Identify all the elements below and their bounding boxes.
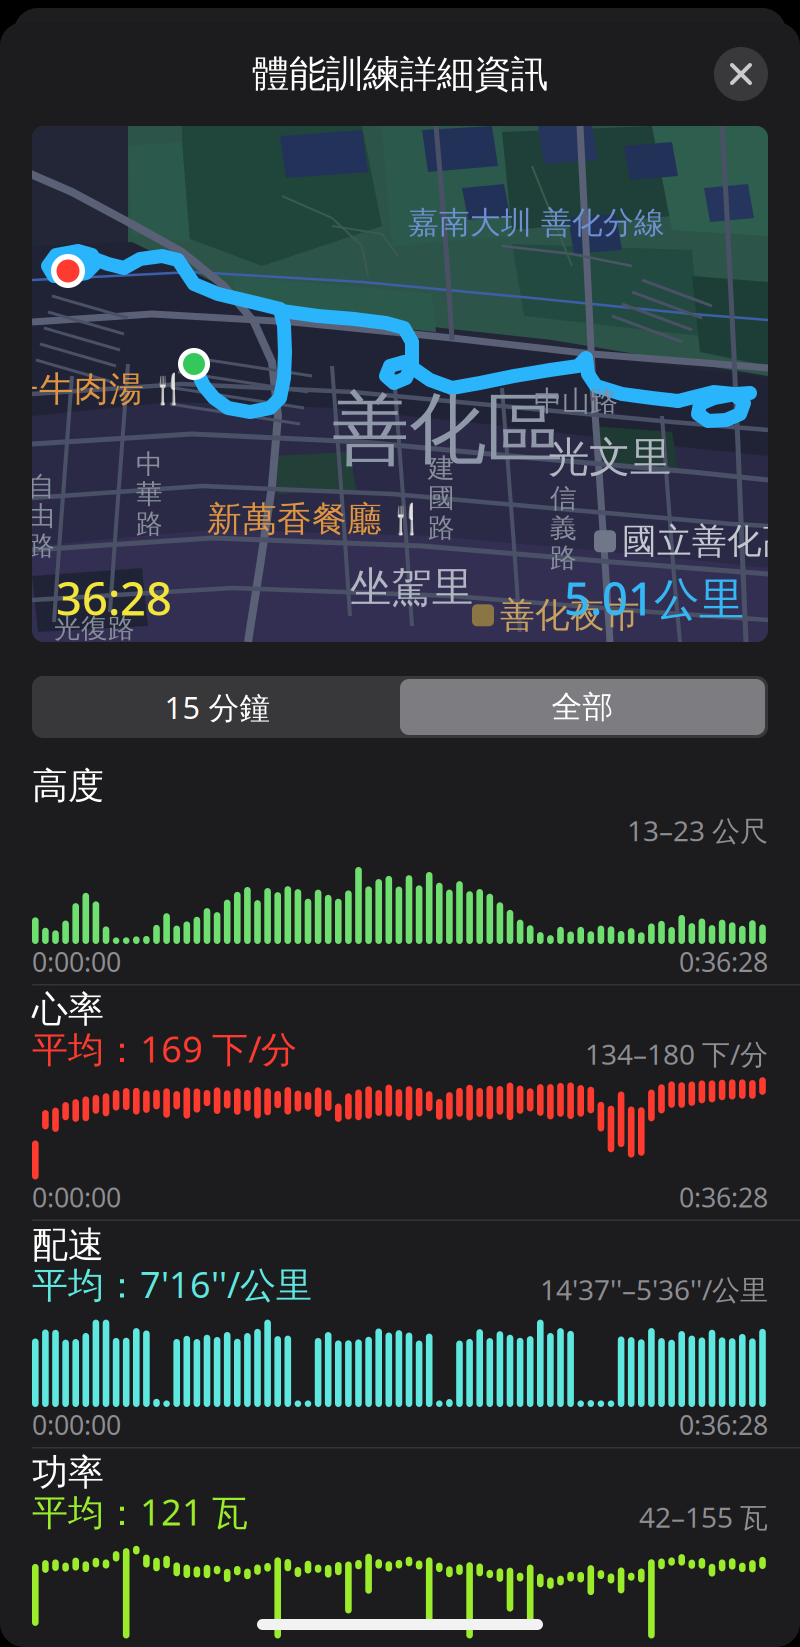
staticText: 14'37''–5'36''/公里 [540,1271,768,1308]
staticText: 光文里 [548,432,671,483]
staticText: 體能訓練詳細資訊 [252,51,548,97]
staticText: 子牛肉湯 [4,368,144,411]
staticText: 36:28 [56,568,172,628]
staticText: 路 [136,507,163,540]
staticText: 國 [428,482,455,515]
staticText: 路 [28,529,55,562]
button[interactable]: 全部 [400,679,765,735]
staticText: 功率 [32,1450,104,1495]
staticText: 光復路 [54,612,135,645]
staticText: 0:36:28 [679,1407,768,1442]
staticText: 平均：121 瓦 [32,1488,248,1535]
staticText: 新萬香餐廳 [207,498,382,541]
staticText: 平均：169 下/分 [32,1025,297,1072]
button[interactable]: 15 分鐘 [35,679,400,735]
staticText: 信 [550,482,577,515]
staticText: 0:36:28 [679,1179,768,1215]
staticText: 13–23 公尺 [627,812,768,849]
staticText: 15 分鐘 [164,687,270,727]
staticText: 🍴 [150,372,187,406]
staticText: 134–180 下/分 [585,1035,768,1072]
staticText [32,801,41,849]
staticText: 配速 [32,1223,104,1267]
staticText: 0:00:00 [32,1407,121,1442]
staticText: 嘉南大圳 善化分線 [408,204,665,242]
staticText: 0:00:00 [32,1179,121,1215]
staticText: 坐駕里 [350,562,473,613]
staticText: 全部 [551,688,613,726]
staticText: 高度 [32,764,104,808]
staticText: 自 [28,470,55,503]
staticText: 華 [136,478,163,511]
staticText: 0:00:00 [32,944,121,979]
staticText: 建 [428,452,455,485]
staticText: 心率 [32,987,104,1032]
staticText: 路 [550,541,577,574]
staticText: 42–155 瓦 [639,1498,768,1535]
staticText: 善化夜市 [500,594,640,637]
staticText: 5.01公里 [564,568,744,628]
staticText: 義 [550,512,577,545]
staticText: 國立善化高級 [622,520,800,563]
staticText: 中 [136,448,163,481]
button[interactable]: Close [714,47,768,101]
staticText: 平均：7'16''/公里 [32,1260,312,1308]
staticText: 🍴 [388,502,425,536]
staticText: 路 [428,511,455,544]
staticText: 0:36:28 [679,944,768,979]
staticText: 中山路 [534,384,618,418]
staticText: 善化區 [332,382,563,477]
staticText: 由 [28,500,55,533]
